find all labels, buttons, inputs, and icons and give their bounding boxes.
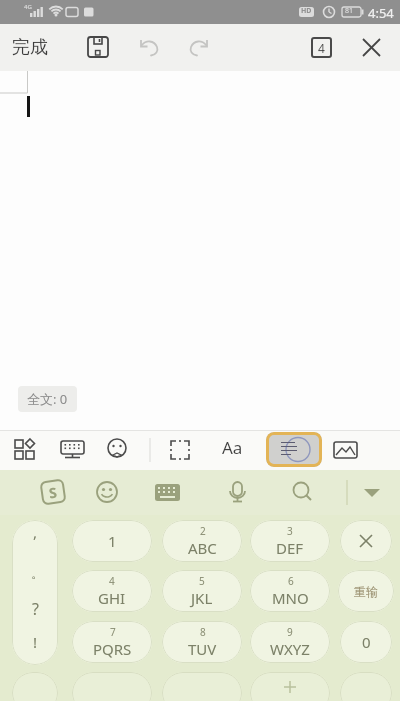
button[interactable]: 6 xyxy=(250,570,330,612)
staticText: 4:54 xyxy=(368,4,394,22)
button[interactable] xyxy=(95,480,121,506)
staticText: 8 xyxy=(200,625,206,639)
staticText: MNO xyxy=(272,588,309,608)
button[interactable] xyxy=(226,478,250,506)
button[interactable] xyxy=(162,672,242,701)
staticText: 4 xyxy=(109,574,115,588)
staticText: S xyxy=(48,482,58,502)
button[interactable]: 4 xyxy=(311,37,332,58)
button[interactable] xyxy=(100,434,140,466)
staticText: 6 xyxy=(288,574,294,588)
staticText: 0 xyxy=(362,632,371,652)
button[interactable] xyxy=(266,432,322,467)
staticText: 重输 xyxy=(354,584,378,599)
button[interactable] xyxy=(361,37,382,58)
staticText: ABC xyxy=(188,538,217,558)
button[interactable] xyxy=(10,434,50,466)
staticText: HD xyxy=(301,6,312,16)
staticText: 。 xyxy=(31,565,44,581)
button[interactable]: , xyxy=(12,520,58,665)
button[interactable]: 4 xyxy=(72,570,152,612)
button[interactable]: 重输 xyxy=(338,570,394,612)
button[interactable]: 0 xyxy=(340,621,392,663)
staticText: ! xyxy=(33,632,38,652)
button[interactable]: 9 xyxy=(250,621,330,663)
button[interactable] xyxy=(72,672,152,701)
staticText: 2 xyxy=(200,524,206,538)
staticText: 全文: 0 xyxy=(27,390,68,408)
staticText: JKL xyxy=(191,588,213,608)
button[interactable] xyxy=(290,479,314,503)
button[interactable] xyxy=(330,436,360,464)
button[interactable]: 5 xyxy=(162,570,242,612)
button[interactable]: Aa xyxy=(222,436,243,459)
button[interactable] xyxy=(188,37,210,59)
button[interactable] xyxy=(358,480,386,504)
button[interactable] xyxy=(12,672,58,701)
button[interactable]: 2 xyxy=(162,520,242,562)
staticText: 7 xyxy=(110,625,116,639)
staticText: 完成 xyxy=(12,36,48,59)
staticText: 4G xyxy=(24,3,32,11)
staticText: TUV xyxy=(188,639,217,659)
button[interactable]: 8 xyxy=(162,621,242,663)
button[interactable]: 1 xyxy=(72,520,152,562)
button[interactable] xyxy=(138,37,160,59)
button[interactable] xyxy=(340,520,392,562)
staticText: Aa xyxy=(222,436,243,459)
staticText: DEF xyxy=(276,538,304,558)
staticText: 9 xyxy=(287,625,293,639)
button[interactable] xyxy=(340,672,392,701)
button[interactable] xyxy=(250,672,330,701)
staticText: ? xyxy=(32,598,39,620)
button[interactable] xyxy=(165,434,199,466)
staticText: WXYZ xyxy=(270,639,310,659)
button[interactable]: 3 xyxy=(250,520,330,562)
staticText: 1 xyxy=(108,531,117,551)
staticText: 4 xyxy=(318,40,325,56)
staticText: , xyxy=(33,522,38,542)
button[interactable]: 完成 xyxy=(12,36,48,59)
button[interactable]: S xyxy=(39,478,66,505)
button[interactable] xyxy=(56,434,96,466)
staticText: 81 xyxy=(345,6,354,16)
button[interactable] xyxy=(153,480,181,508)
staticText: PQRS xyxy=(93,639,132,659)
staticText: 5 xyxy=(199,574,205,588)
button[interactable] xyxy=(86,35,110,59)
staticText: GHI xyxy=(98,588,126,608)
staticText: 3 xyxy=(287,524,293,538)
button[interactable]: 7 xyxy=(72,621,152,663)
